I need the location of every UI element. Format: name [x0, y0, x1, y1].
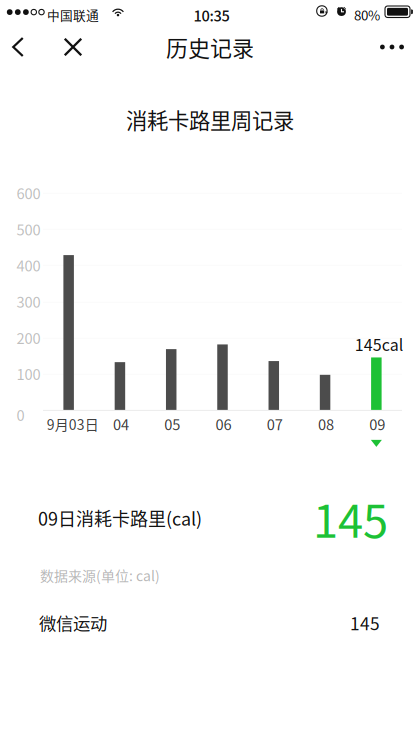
staticText: 145cal [355, 332, 404, 356]
staticText: 400 [16, 255, 40, 276]
staticText: 145 [313, 485, 388, 551]
staticText: 80% [354, 5, 380, 24]
button[interactable]: Back [0, 25, 36, 69]
staticText: 08 [318, 413, 334, 434]
button[interactable]: Close [51, 25, 95, 69]
staticText: 微信运动 [39, 610, 107, 635]
staticText: 200 [16, 327, 40, 348]
staticText: 07 [267, 413, 283, 434]
button[interactable]: More [370, 25, 414, 69]
staticText: 9月03日 [47, 414, 99, 434]
staticText: 600 [16, 182, 40, 203]
staticText: 06 [215, 413, 231, 434]
staticText: 05 [164, 413, 180, 434]
staticText: 300 [16, 291, 40, 312]
staticText: 数据来源(单位: cal) [40, 565, 160, 585]
staticText: 中国联通 [47, 5, 99, 24]
staticText: 04 [113, 413, 129, 434]
staticText: 09日消耗卡路里(cal) [38, 505, 202, 531]
staticText: 500 [16, 218, 40, 240]
staticText: 100 [16, 363, 40, 384]
staticText: 10:35 [193, 4, 229, 26]
staticText: 0 [16, 404, 24, 425]
staticText: 09 [369, 413, 385, 434]
staticText: 历史记录 [166, 31, 254, 63]
staticText: 消耗卡路里周记录 [126, 104, 294, 135]
staticText: 145 [350, 610, 380, 635]
